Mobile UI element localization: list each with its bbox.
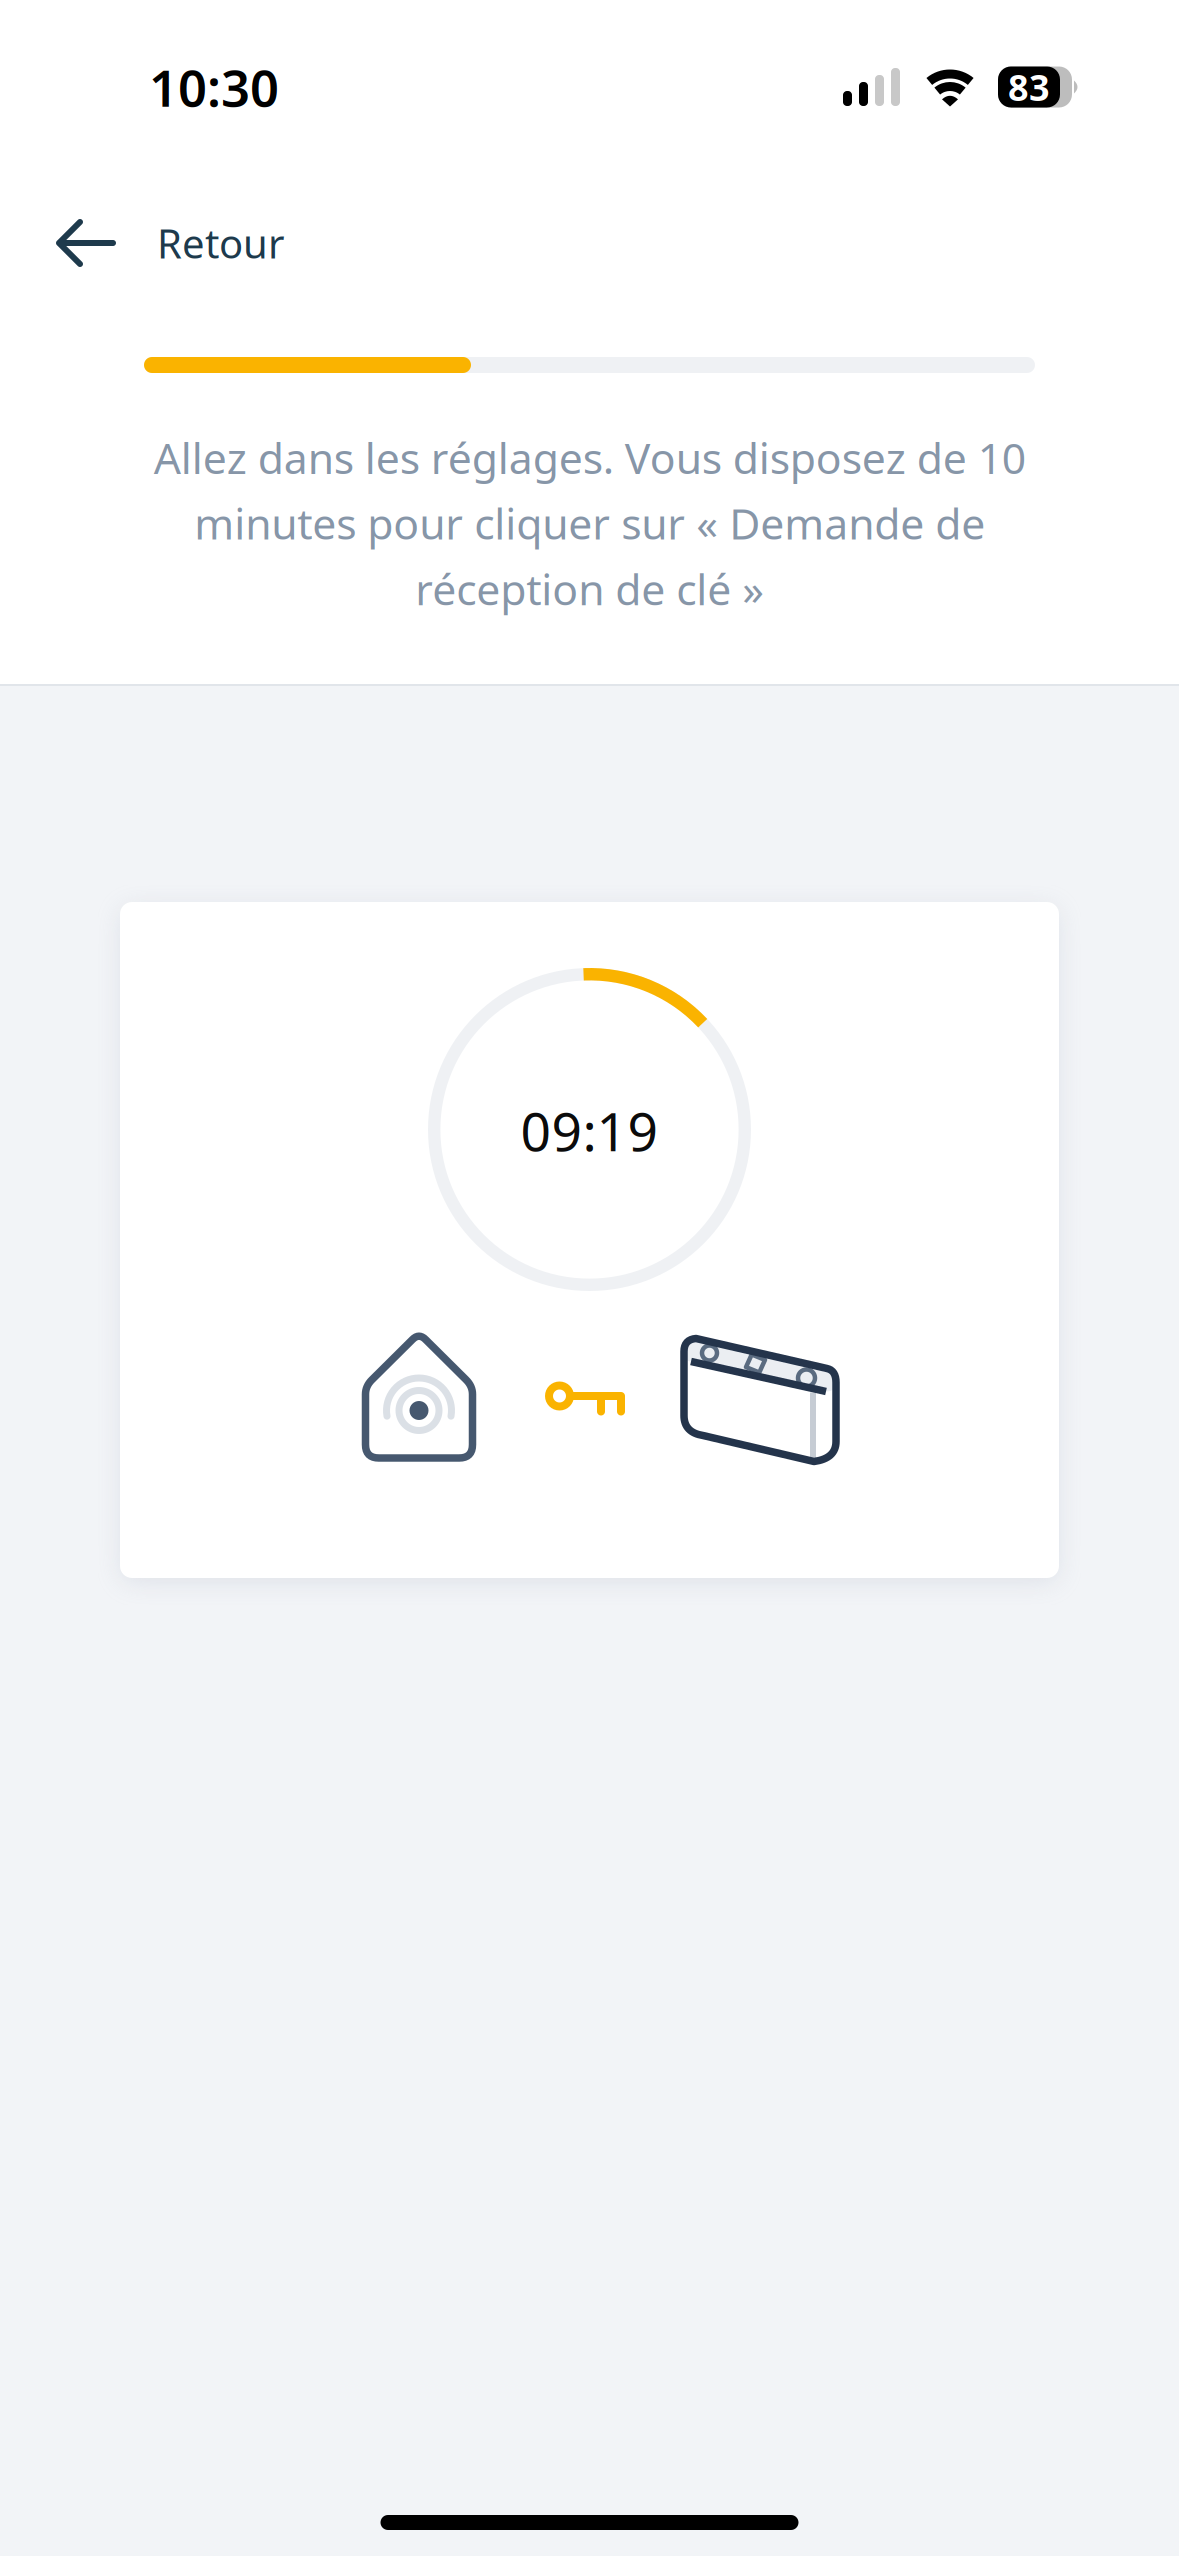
staticText: 10:30 xyxy=(149,53,279,121)
staticText: 09:19 xyxy=(520,1095,658,1166)
button[interactable]: Retour xyxy=(0,174,1179,290)
staticText: Allez dans les réglages. Vous disposez d… xyxy=(153,429,1025,617)
staticText: Retour xyxy=(157,216,285,269)
staticText: 83 xyxy=(1008,63,1050,111)
